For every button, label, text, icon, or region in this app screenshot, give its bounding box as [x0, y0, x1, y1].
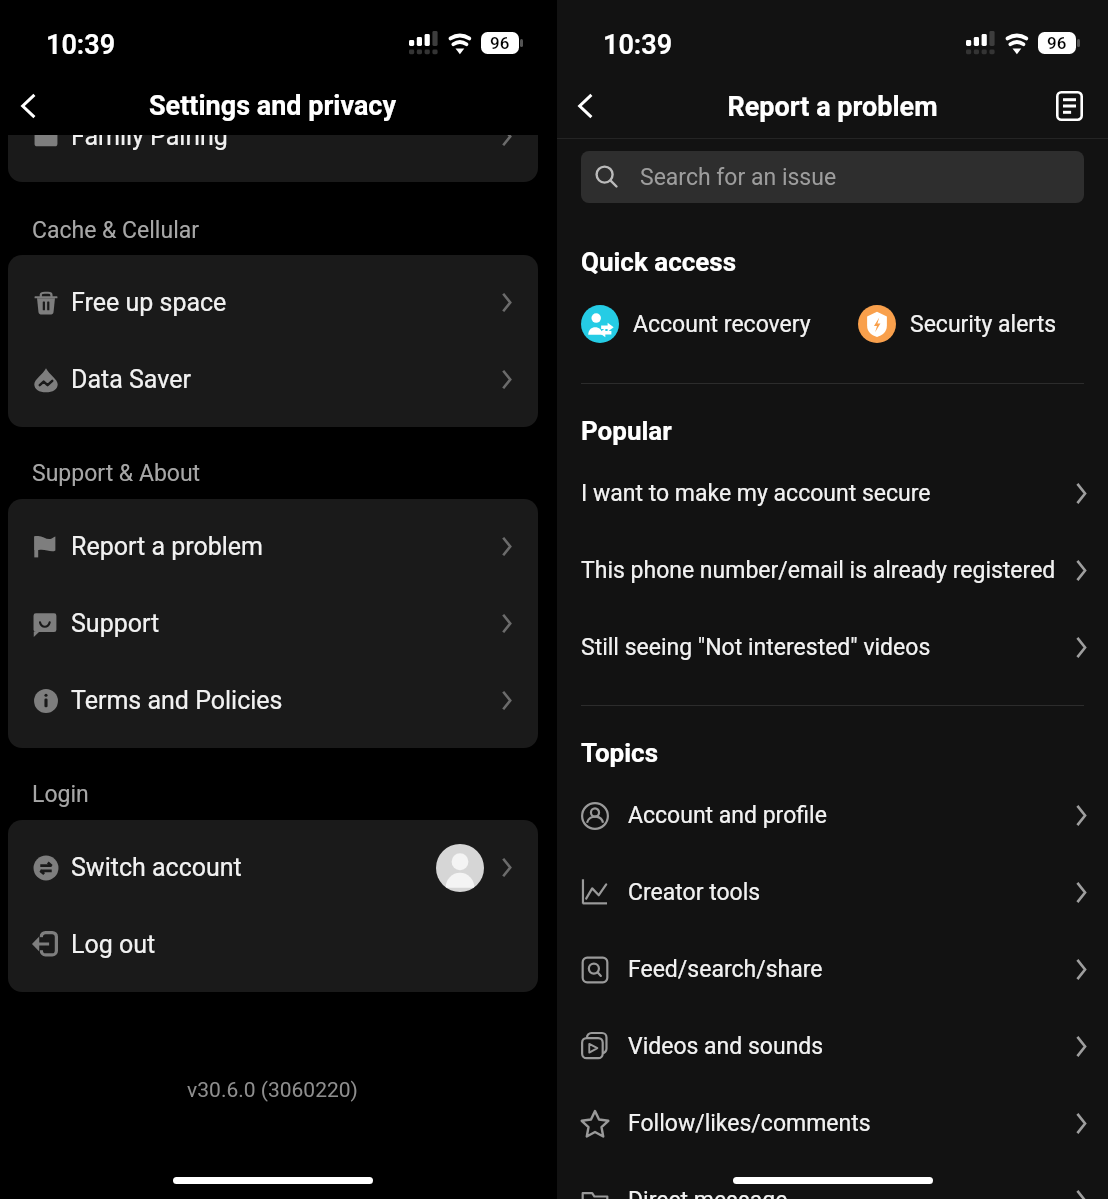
staticText: Support & About: [32, 460, 201, 487]
button[interactable]: Direct message: [581, 1162, 1087, 1199]
button[interactable]: Family Pairing: [8, 135, 538, 160]
staticText: Account recovery: [633, 311, 811, 338]
staticText: Login: [32, 781, 89, 808]
staticText: Security alerts: [910, 311, 1057, 338]
staticText: v30.6.0 (3060220): [0, 1078, 545, 1103]
button[interactable]: Data Saver: [8, 341, 538, 418]
button[interactable]: This phone number/email is already regis…: [581, 532, 1087, 609]
staticText: I want to make my account secure: [581, 480, 1075, 507]
staticText: Switch account: [71, 853, 242, 882]
button[interactable]: Support: [8, 585, 538, 662]
button[interactable]: Account recovery: [581, 305, 811, 343]
staticText: Videos and sounds: [628, 1033, 1075, 1060]
staticText: Family Pairing: [71, 135, 228, 151]
staticText: Terms and Policies: [71, 686, 283, 715]
staticText: Account and profile: [628, 802, 1075, 829]
button[interactable]: Back: [2, 80, 54, 132]
button[interactable]: Report a problem: [8, 508, 538, 585]
button[interactable]: I want to make my account secure: [581, 455, 1087, 532]
staticText: Report a problem: [557, 91, 1108, 123]
button[interactable]: Videos and sounds: [581, 1008, 1087, 1085]
button[interactable]: Terms and Policies: [8, 662, 538, 739]
staticText: Popular: [581, 416, 672, 446]
button[interactable]: Free up space: [8, 264, 538, 341]
button[interactable]: Feed/search/share: [581, 931, 1087, 1008]
staticText: 96: [490, 33, 510, 53]
staticText: Creator tools: [628, 879, 1075, 906]
staticText: Feed/search/share: [628, 956, 1075, 983]
button[interactable]: Account and profile: [581, 777, 1087, 854]
staticText: Data Saver: [71, 365, 191, 394]
staticText: Report a problem: [71, 532, 264, 561]
staticText: Free up space: [71, 288, 227, 317]
staticText: This phone number/email is already regis…: [581, 557, 1075, 584]
staticText: Search for an issue: [640, 164, 837, 191]
staticText: 10:39: [46, 29, 116, 61]
staticText: Quick access: [581, 247, 737, 277]
staticText: Cache & Cellular: [32, 217, 200, 244]
button[interactable]: Follow/likes/comments: [581, 1085, 1087, 1162]
staticText: 96: [1047, 33, 1067, 53]
staticText: Support: [71, 609, 160, 638]
button[interactable]: Log out: [8, 906, 538, 983]
staticText: 10:39: [603, 29, 673, 61]
staticText: Log out: [71, 930, 156, 959]
staticText: Follow/likes/comments: [628, 1110, 1075, 1137]
staticText: Topics: [581, 738, 658, 768]
button[interactable]: Creator tools: [581, 854, 1087, 931]
button[interactable]: Still seeing "Not interested" videos: [581, 609, 1087, 686]
button[interactable]: Back: [559, 80, 611, 132]
button[interactable]: My reports: [1043, 80, 1095, 132]
staticText: Still seeing "Not interested" videos: [581, 634, 1075, 661]
staticText: Direct message: [628, 1187, 1075, 1199]
button[interactable]: Search for an issue: [581, 151, 1084, 203]
button[interactable]: Security alerts: [858, 305, 1057, 343]
button[interactable]: Switch account: [8, 829, 538, 906]
staticText: Settings and privacy: [0, 90, 545, 122]
